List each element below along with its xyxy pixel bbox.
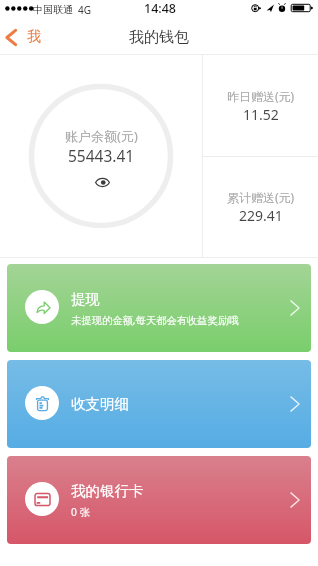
staticText: 未提现的金额,每天都会有收益奖励哦	[71, 313, 239, 327]
staticText: 11.52	[243, 105, 279, 124]
staticText: 229.41	[239, 206, 283, 225]
staticText: 中国联通	[33, 3, 73, 16]
button[interactable]: 提现	[7, 264, 311, 352]
button[interactable]: 我的银行卡	[7, 456, 311, 544]
staticText: 提现	[71, 290, 100, 308]
staticText: 0 张	[71, 505, 90, 519]
staticText: 收支明细	[71, 395, 129, 413]
staticText: 我的钱包	[129, 28, 189, 47]
button[interactable]: 我	[0, 28, 49, 46]
staticText: 我	[27, 28, 41, 46]
staticText: 4G	[78, 3, 91, 17]
staticText: 昨日赠送(元)	[227, 88, 295, 104]
staticText: 14:48	[144, 0, 177, 17]
staticText: 我的银行卡	[71, 482, 144, 500]
staticText: 55443.41	[68, 145, 135, 166]
button[interactable]: 显示余额	[93, 173, 111, 191]
staticText: 累计赠送(元)	[227, 189, 295, 205]
button[interactable]: 收支明细	[7, 360, 311, 448]
staticText: 账户余额(元)	[65, 127, 138, 145]
